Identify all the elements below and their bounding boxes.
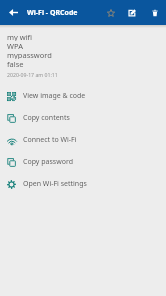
staticText: Copy contents — [23, 113, 70, 123]
button[interactable]: Copy password — [0, 151, 166, 173]
staticText: my wifi — [7, 32, 33, 41]
staticText: View image & code — [23, 91, 86, 101]
staticText: mypassword — [7, 50, 52, 59]
button[interactable]: View image & code — [0, 85, 166, 107]
staticText: 2020-09-17 am 01:11 — [7, 71, 58, 78]
button[interactable]: Delete — [143, 0, 166, 25]
staticText: Open Wi-Fi settings — [23, 179, 87, 189]
button[interactable]: Back — [0, 0, 26, 25]
staticText: Copy password — [23, 157, 73, 167]
staticText: false — [7, 59, 24, 68]
button[interactable]: Favourite — [102, 0, 120, 25]
staticText: Connect to Wi-Fi — [23, 135, 77, 145]
button[interactable]: Connect to Wi-Fi — [0, 129, 166, 151]
button[interactable]: Open Wi-Fi settings — [0, 173, 166, 195]
staticText: WPA — [7, 41, 23, 50]
staticText: Wi-Fi - QRCode — [27, 8, 78, 18]
button[interactable]: Copy contents — [0, 107, 166, 129]
button[interactable]: Edit — [120, 0, 143, 25]
